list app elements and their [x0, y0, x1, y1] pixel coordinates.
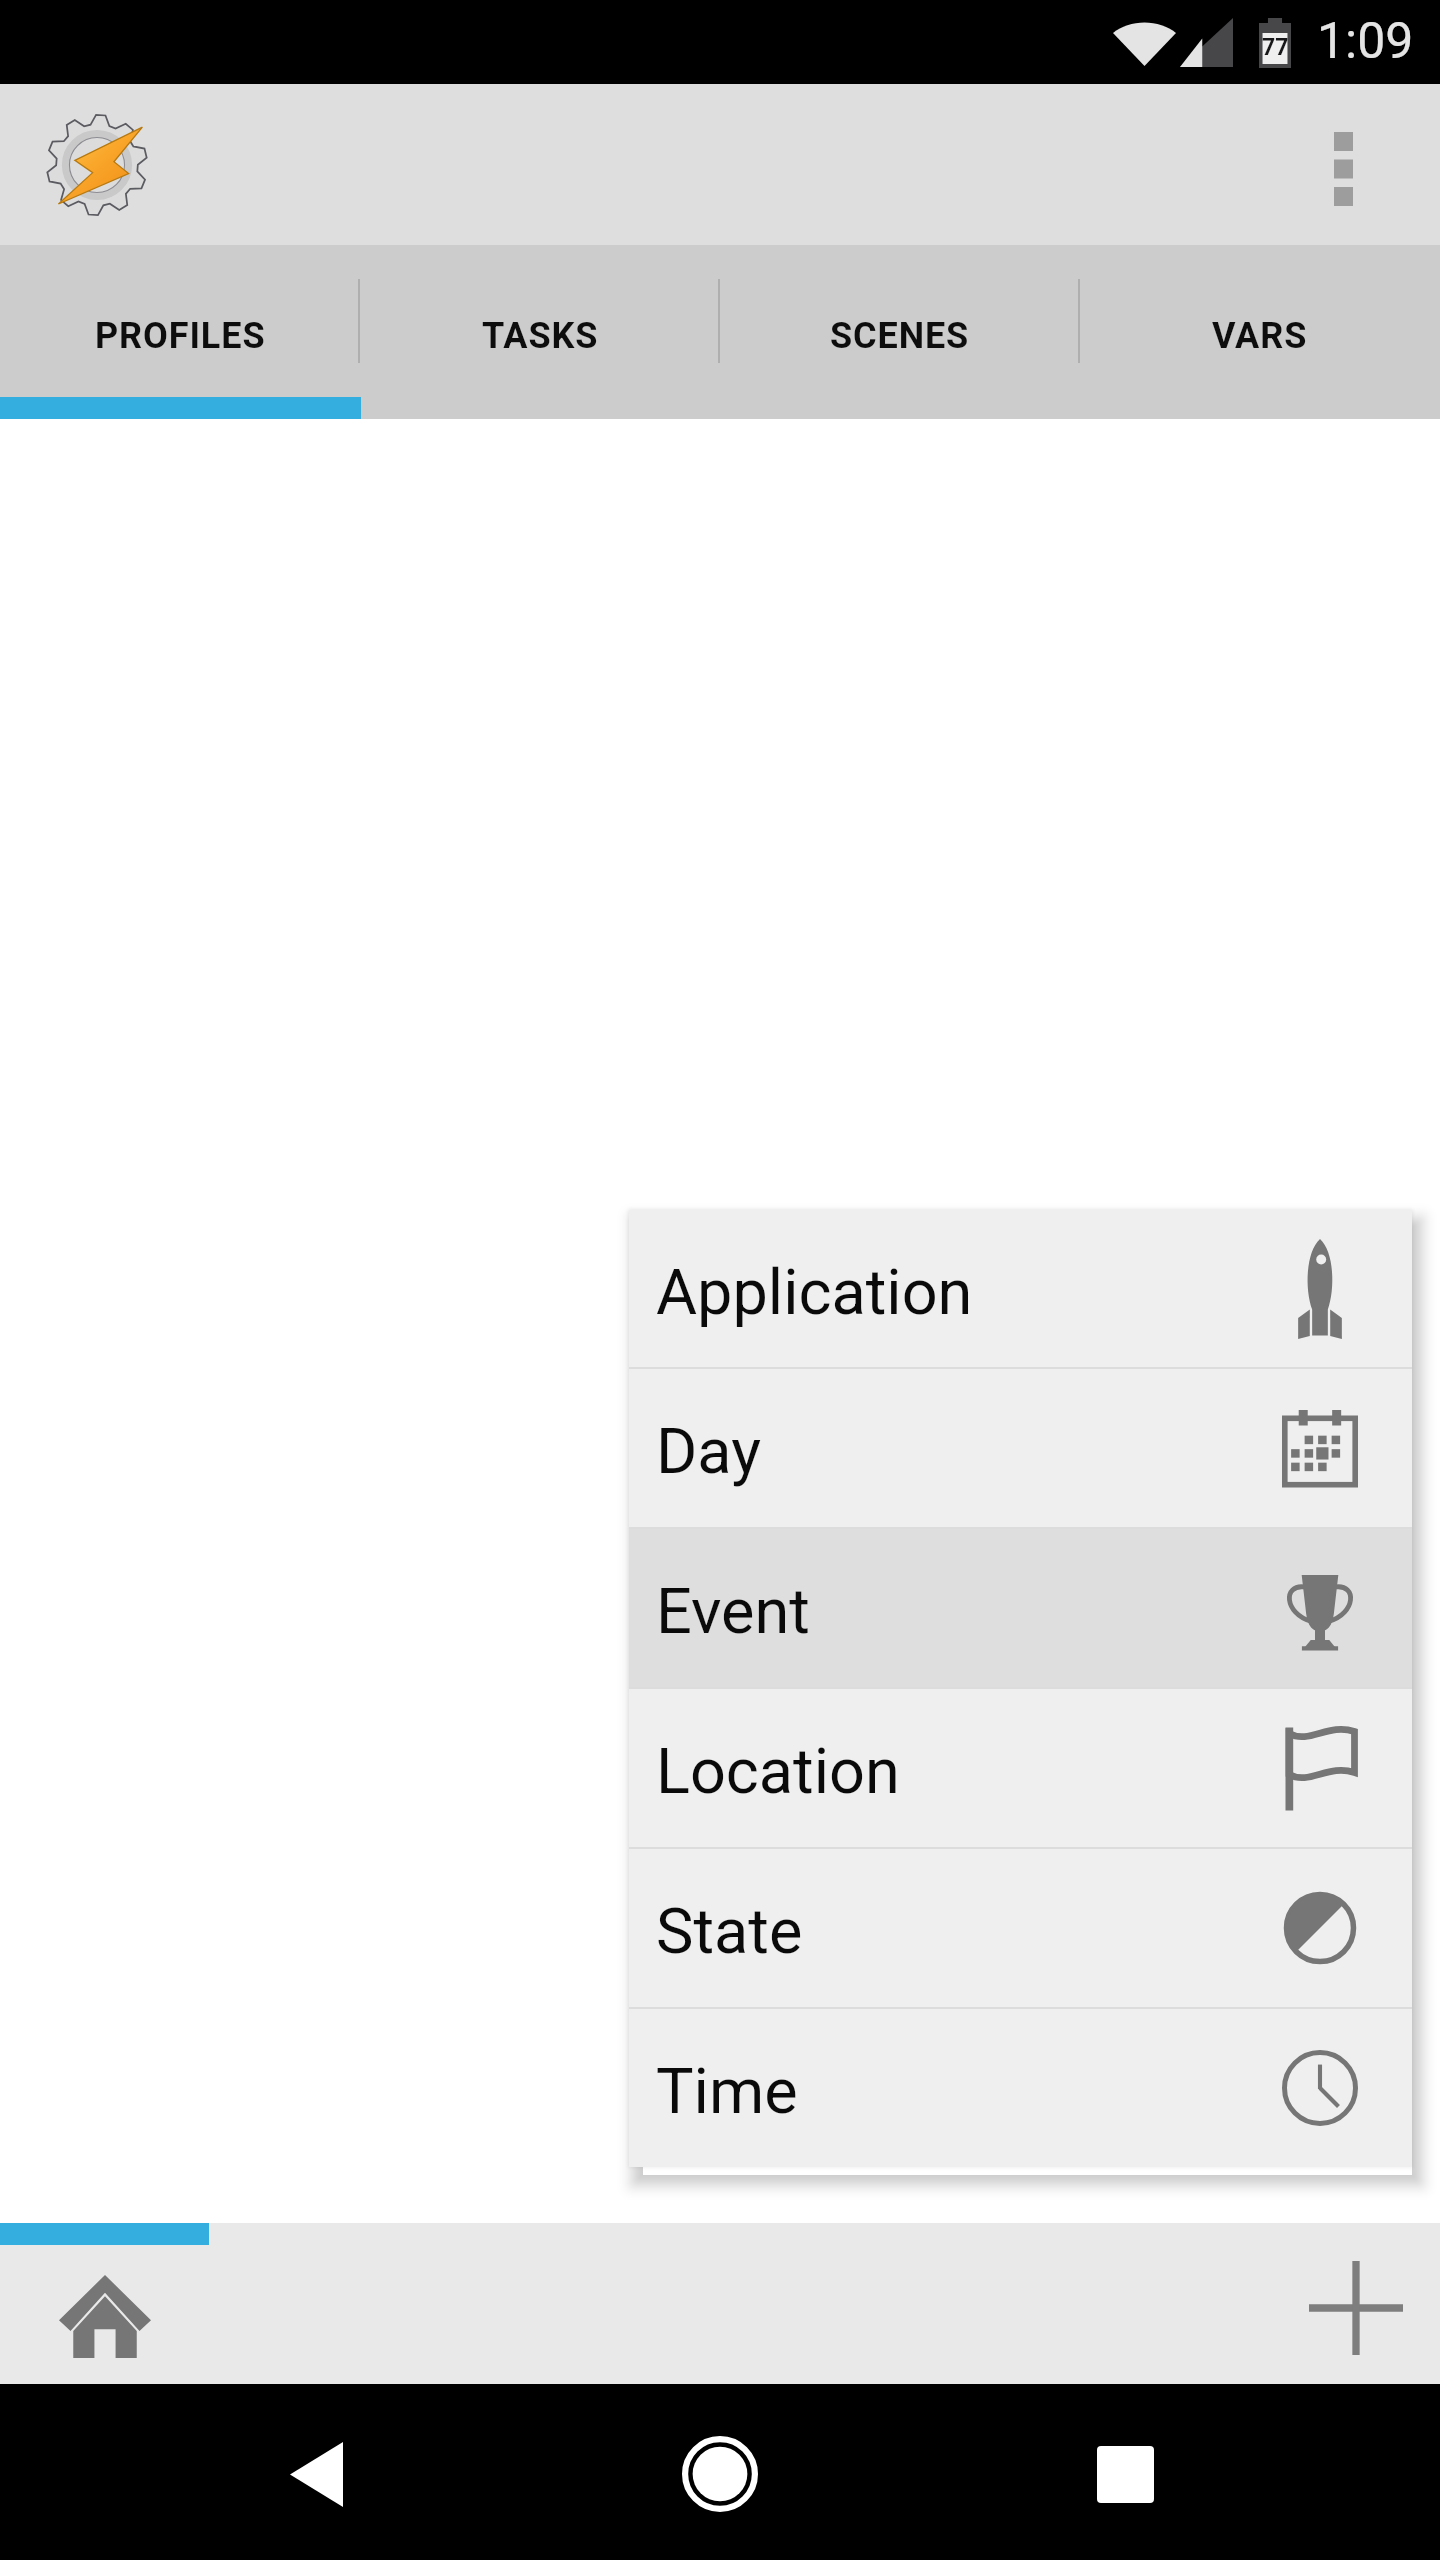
- staticText: VARS: [1212, 315, 1308, 357]
- button[interactable]: Event: [629, 1529, 1412, 1687]
- staticText: SCENES: [830, 315, 970, 357]
- button[interactable]: Home: [25, 2245, 185, 2406]
- button[interactable]: Day: [629, 1369, 1412, 1527]
- staticText: PROFILES: [95, 315, 266, 357]
- button[interactable]: SCENES: [720, 245, 1080, 397]
- staticText: Application: [656, 1256, 973, 1330]
- button[interactable]: Add: [1286, 2245, 1426, 2406]
- staticText: 77: [1262, 34, 1289, 61]
- button[interactable]: Home: [660, 2384, 780, 2560]
- button[interactable]: VARS: [1080, 245, 1440, 397]
- staticText: State: [656, 1895, 803, 1969]
- staticText: Event: [656, 1575, 810, 1649]
- button[interactable]: PROFILES: [0, 245, 360, 397]
- button[interactable]: Tasker: [43, 111, 151, 219]
- button[interactable]: Back: [256, 2384, 376, 2560]
- staticText: Time: [656, 2055, 798, 2129]
- staticText: Location: [656, 1735, 900, 1809]
- button[interactable]: More options: [1288, 84, 1398, 245]
- button[interactable]: Location: [629, 1689, 1412, 1847]
- button[interactable]: TASKS: [360, 245, 720, 397]
- staticText: TASKS: [482, 315, 599, 357]
- button[interactable]: Time: [629, 2009, 1412, 2167]
- staticText: Day: [656, 1415, 761, 1489]
- button[interactable]: State: [629, 1849, 1412, 2007]
- staticText: 1:09: [1317, 12, 1414, 71]
- button[interactable]: Recents: [1065, 2384, 1185, 2560]
- button[interactable]: Application: [629, 1210, 1412, 1367]
